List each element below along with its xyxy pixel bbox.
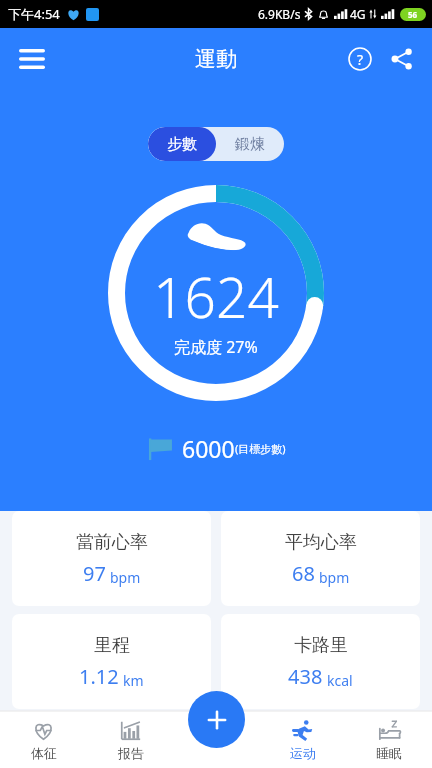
staticText: 平均心率 [285,531,357,554]
staticText: 56 [408,9,418,20]
staticText: 68 [292,560,315,587]
staticText: kcal [327,671,353,690]
button[interactable]: 睡眠 [346,711,432,768]
staticText: 97 [83,560,106,587]
button[interactable]: 运动 [260,711,346,768]
staticText: 當前心率 [76,531,148,554]
button[interactable]: Add [188,691,245,748]
staticText: 438 [288,663,323,690]
staticText: 报告 [118,745,144,761]
staticText: (目標步數) [235,441,286,456]
button[interactable]: Menu [8,35,56,83]
staticText: 体征 [31,745,57,761]
staticText: 4G [350,6,366,22]
button[interactable]: 當前心率 [12,511,211,606]
button[interactable]: Help [340,39,380,79]
staticText: 完成度 27% [174,336,258,358]
staticText: bpm [110,568,141,587]
button[interactable]: 体征 [0,711,87,768]
button[interactable]: 里程 [12,614,211,709]
button[interactable]: 鍛煉 [216,127,284,161]
button[interactable]: 步數 [148,127,216,161]
staticText: 6.9KB/s [258,6,301,22]
button[interactable]: 卡路里 [221,614,420,709]
staticText: 步數 [167,135,197,154]
staticText: 下午4:54 [8,5,60,23]
staticText: 1.12 [79,663,119,690]
button[interactable]: 平均心率 [221,511,420,606]
staticText: 卡路里 [294,634,348,657]
staticText: 6000 [182,433,235,464]
staticText: 鍛煉 [235,135,265,154]
staticText: 运动 [290,745,316,761]
button[interactable]: Share [382,39,422,79]
staticText: 睡眠 [376,745,402,761]
staticText: ? [357,50,364,69]
staticText: 1624 [153,259,279,334]
staticText: km [123,671,144,690]
staticText: 運動 [195,46,237,72]
staticText: bpm [319,568,350,587]
staticText: 里程 [94,634,130,657]
button[interactable]: 报告 [87,711,174,768]
